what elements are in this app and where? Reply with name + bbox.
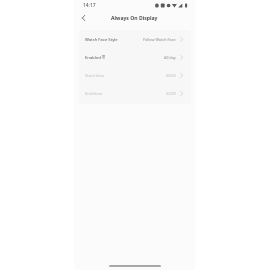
button[interactable]: Back (77, 11, 90, 24)
button[interactable]: More information (102, 54, 105, 61)
staticText: Watch Face Style (85, 37, 118, 43)
staticText: 00:00 (166, 73, 176, 78)
button[interactable]: End time (79, 84, 191, 102)
staticText: Enabled (85, 55, 101, 61)
staticText: Follow Watch Face (143, 37, 176, 42)
staticText: 14:17 (83, 2, 96, 9)
staticText: 22:00 (166, 91, 176, 96)
staticText: Start time (85, 73, 105, 79)
button[interactable]: Start time (79, 66, 191, 84)
staticText: End time (85, 91, 103, 97)
staticText: Always On Display (111, 15, 158, 22)
button[interactable]: Enabled (79, 48, 191, 66)
staticText: All day (164, 55, 176, 60)
button[interactable]: Watch Face Style (79, 30, 191, 48)
